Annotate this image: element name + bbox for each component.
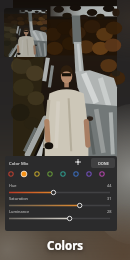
button[interactable] [4,8,47,57]
button[interactable]: Hue [5,183,117,196]
button[interactable] [20,170,28,178]
staticText: 28 [107,209,112,214]
button[interactable]: Colors [0,231,130,260]
button[interactable]: Luminance [5,209,117,222]
button[interactable] [7,170,15,178]
button[interactable] [33,170,41,178]
staticText: 44 [107,183,112,188]
button[interactable] [46,170,54,178]
staticText: Color Mix [9,160,29,166]
button[interactable] [59,170,67,178]
staticText: Colors [47,238,84,254]
staticText: Saturation [9,196,29,201]
button[interactable] [85,170,93,178]
button[interactable]: DONE [91,158,115,168]
staticText: Luminance [9,209,30,214]
button[interactable] [73,157,83,167]
button[interactable] [72,170,80,178]
staticText: DONE [98,161,109,166]
staticText: Hue [9,183,17,188]
staticText: 31 [107,196,112,201]
button[interactable]: Saturation [5,196,117,209]
button[interactable] [98,170,106,178]
